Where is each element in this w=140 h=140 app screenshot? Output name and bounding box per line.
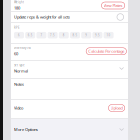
staticText: 7.5: [50, 33, 55, 37]
staticText: Upload: [111, 105, 123, 111]
staticText: Calculate Percentage: [88, 49, 124, 54]
button[interactable]: 8.5: [70, 32, 80, 38]
staticText: Video: [14, 105, 23, 111]
staticText: 8: [63, 33, 65, 37]
staticText: Normal: [14, 68, 28, 74]
staticText: 10: [107, 33, 111, 37]
staticText: 6.5: [28, 33, 33, 37]
staticText: 9.5: [95, 33, 100, 37]
button[interactable]: Choose set type: [119, 67, 124, 70]
staticText: Notes: [14, 81, 24, 87]
staticText: 8.5: [72, 33, 77, 37]
button[interactable]: Apply to all sets: [117, 14, 124, 20]
button[interactable]: Calculate Percentage: [86, 48, 126, 55]
button[interactable]: Upload: [108, 104, 125, 111]
button[interactable]: 7: [36, 32, 46, 38]
staticText: Update reps & weight for all sets: [14, 14, 70, 20]
button[interactable]: 7.5: [48, 32, 58, 38]
staticText: 180: [14, 5, 20, 11]
button[interactable]: 8: [59, 32, 69, 38]
button[interactable]: 10: [104, 32, 114, 38]
staticText: Set Type: [14, 63, 25, 67]
staticText: RPE: [14, 26, 19, 29]
staticText: Intensity (%): [14, 46, 31, 50]
button[interactable]: 6.5: [25, 32, 35, 38]
button[interactable]: 9: [81, 32, 91, 38]
staticText: View Plates: [104, 3, 123, 8]
staticText: 7: [40, 33, 42, 37]
button[interactable]: View Plates: [101, 2, 125, 9]
staticText: 6: [18, 33, 20, 37]
staticText: 9: [85, 33, 87, 37]
staticText: More Options: [14, 127, 38, 132]
staticText: 60: [14, 51, 18, 56]
button[interactable]: 6: [14, 32, 24, 38]
staticText: Weight: [14, 0, 24, 4]
button[interactable]: 9.5: [92, 32, 102, 38]
